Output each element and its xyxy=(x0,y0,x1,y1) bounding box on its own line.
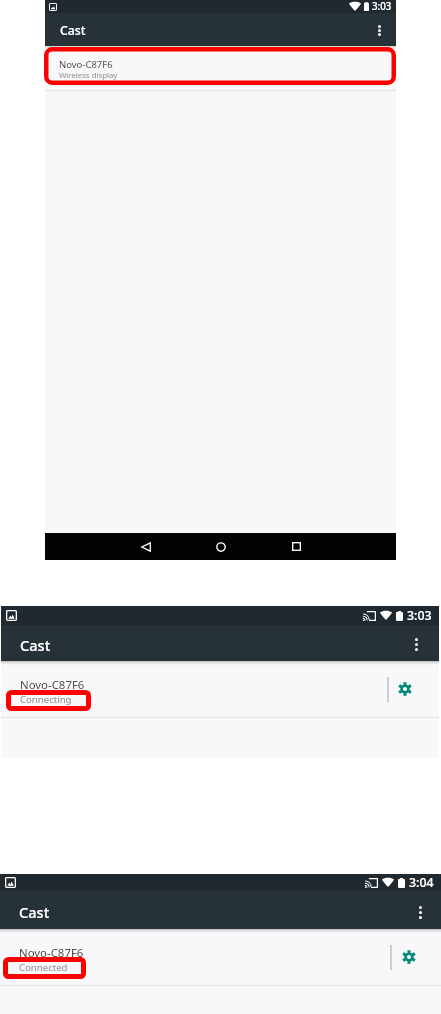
button[interactable]: Recent apps xyxy=(282,533,310,560)
button[interactable]: Novo-C87F6 xyxy=(45,46,396,90)
staticText: Novo-C87F6 xyxy=(19,945,84,961)
staticText: Wireless display xyxy=(59,70,118,81)
button[interactable]: More options xyxy=(371,13,387,46)
button[interactable]: More options xyxy=(407,625,426,661)
button[interactable]: Home xyxy=(207,533,235,560)
button[interactable]: Device settings xyxy=(395,943,423,971)
staticText: Cast xyxy=(19,902,50,922)
button[interactable]: Device settings xyxy=(391,675,419,703)
button[interactable]: More options xyxy=(411,891,430,929)
staticText: Connecting xyxy=(20,693,72,706)
button[interactable]: Novo-C87F6 xyxy=(0,929,441,985)
button[interactable]: Back xyxy=(132,533,160,560)
staticText: 3:03 xyxy=(407,607,432,624)
staticText: 3:03 xyxy=(372,0,392,13)
staticText: 3:04 xyxy=(409,874,434,891)
staticText: Connected xyxy=(19,961,68,974)
staticText: Novo-C87F6 xyxy=(20,677,85,693)
button[interactable]: Novo-C87F6 xyxy=(1,661,439,717)
staticText: Cast xyxy=(60,22,86,39)
staticText: Cast xyxy=(20,635,51,655)
staticText: Novo-C87F6 xyxy=(59,58,113,71)
